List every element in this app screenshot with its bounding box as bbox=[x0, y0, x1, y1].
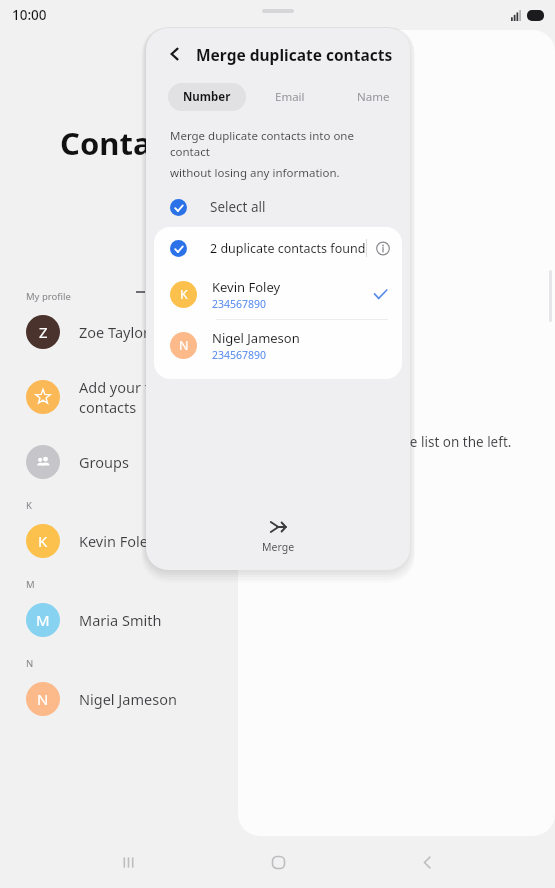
button[interactable]: Merge bbox=[146, 518, 410, 570]
button[interactable]: K bbox=[0, 518, 238, 564]
staticText: Select a contact from the list on the le… bbox=[260, 433, 512, 451]
staticText: without losing any information. bbox=[170, 165, 340, 181]
button[interactable]: K bbox=[154, 269, 402, 319]
staticText: Number bbox=[183, 89, 231, 105]
staticText: Merge duplicate contacts bbox=[196, 44, 393, 65]
staticText: M bbox=[26, 578, 35, 591]
button[interactable]: Email bbox=[260, 83, 320, 111]
staticText: N bbox=[37, 689, 49, 709]
staticText: 234567890 bbox=[212, 297, 267, 311]
staticText: 10:00 bbox=[12, 6, 47, 24]
staticText: Groups bbox=[79, 452, 129, 472]
staticText: Nigel Jameson bbox=[79, 689, 177, 709]
staticText: Kevin Foley bbox=[79, 531, 156, 551]
staticText: Nigel Jameson bbox=[212, 329, 300, 347]
staticText: M bbox=[36, 610, 50, 630]
staticText: Kevin Foley bbox=[212, 278, 281, 296]
button[interactable]: Name bbox=[342, 83, 405, 111]
staticText: N bbox=[179, 337, 189, 354]
staticText: K bbox=[38, 531, 48, 551]
button[interactable]: Number bbox=[168, 83, 246, 111]
staticText: 234567890 bbox=[212, 348, 267, 362]
button[interactable]: Back bbox=[405, 840, 449, 884]
button[interactable]: Groups bbox=[0, 439, 238, 485]
staticText: Z bbox=[39, 322, 48, 342]
staticText: Name bbox=[357, 89, 390, 105]
button[interactable]: Home bbox=[256, 840, 300, 884]
button[interactable]: Recents bbox=[106, 840, 150, 884]
staticText: Add your favourite bbox=[79, 377, 207, 397]
button[interactable]: Back bbox=[162, 41, 188, 67]
staticText: Zoe Taylor bbox=[79, 322, 149, 342]
button[interactable]: Z bbox=[0, 309, 238, 355]
staticText: N bbox=[26, 657, 34, 670]
staticText: contacts bbox=[79, 397, 137, 417]
staticText: Contacts bbox=[60, 122, 197, 164]
button[interactable]: M bbox=[0, 597, 238, 643]
button[interactable]: N bbox=[0, 676, 238, 722]
staticText: Select all bbox=[210, 198, 266, 216]
staticText: Merge bbox=[262, 540, 295, 554]
staticText: K bbox=[26, 499, 32, 512]
staticText: My profile bbox=[26, 290, 71, 303]
staticText: K bbox=[180, 286, 188, 303]
button[interactable]: Select all bbox=[146, 181, 410, 223]
button[interactable]: 2 duplicate contacts found bbox=[154, 227, 402, 269]
button[interactable]: Add your favourite bbox=[0, 371, 238, 423]
staticText: Maria Smith bbox=[79, 610, 162, 630]
button[interactable]: Info bbox=[376, 238, 390, 258]
staticText: Merge duplicate contacts into one contac… bbox=[170, 128, 392, 160]
button[interactable]: N bbox=[154, 320, 402, 370]
staticText: Email bbox=[275, 89, 305, 105]
staticText: 2 duplicate contacts found bbox=[210, 240, 366, 257]
